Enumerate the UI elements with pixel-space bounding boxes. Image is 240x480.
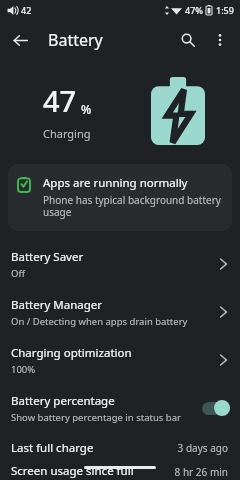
- button[interactable]: Apps are running normally: [8, 164, 232, 231]
- button[interactable]: Back: [4, 24, 36, 56]
- staticText: Battery Manager: [11, 297, 103, 313]
- staticText: 47%: [185, 4, 203, 16]
- staticText: Charging: [43, 126, 91, 141]
- staticText: 42: [21, 4, 32, 16]
- staticText: Battery Saver: [11, 249, 84, 265]
- staticText: Off: [11, 267, 25, 280]
- button[interactable]: More options: [204, 24, 236, 56]
- button[interactable]: Charging optimization: [0, 336, 240, 384]
- staticText: Charging optimization: [11, 345, 132, 361]
- staticText: Last full charge: [11, 440, 171, 456]
- button[interactable]: Search: [172, 24, 204, 56]
- staticText: 47: [43, 81, 77, 120]
- button[interactable]: Battery Saver: [0, 240, 240, 288]
- staticText: 8 hr 26 min: [174, 465, 228, 479]
- staticText: %: [81, 101, 92, 117]
- button[interactable]: Screen usage since full charge: [0, 463, 240, 480]
- staticText: Phone has typical background battery usa…: [43, 193, 222, 219]
- staticText: Screen usage since full charge: [11, 463, 168, 480]
- staticText: On / Detecting when apps drain battery: [11, 315, 188, 328]
- button[interactable]: Last full charge: [0, 432, 240, 463]
- staticText: 3 days ago: [177, 441, 228, 455]
- staticText: 100%: [11, 363, 36, 376]
- staticText: Apps are running normally: [43, 175, 188, 191]
- button[interactable]: Battery percentage: [0, 384, 240, 432]
- button[interactable]: Battery Manager: [0, 288, 240, 336]
- staticText: Show battery percentage in status bar: [11, 411, 181, 424]
- staticText: Battery percentage: [11, 393, 115, 409]
- staticText: 1:59: [216, 4, 234, 16]
- staticText: Battery: [48, 29, 103, 51]
